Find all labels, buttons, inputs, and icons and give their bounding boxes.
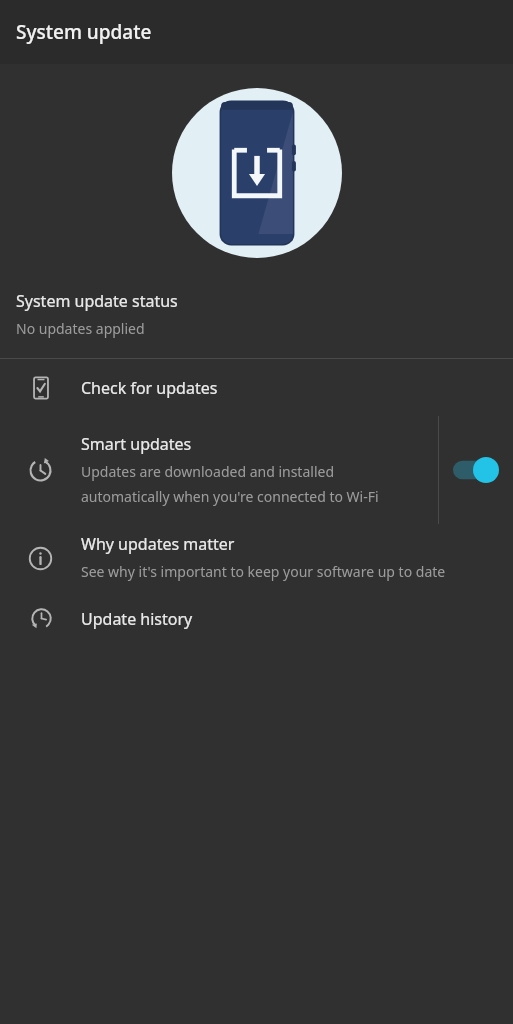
button[interactable]: Update history [0, 592, 513, 645]
button[interactable]: Smart updates [0, 421, 438, 520]
button[interactable]: Check for updates [0, 359, 513, 416]
button[interactable]: Smart updates toggle [439, 416, 513, 524]
staticText: Update history [81, 608, 193, 630]
button[interactable]: Why updates matter [0, 524, 513, 592]
staticText: Smart updates [81, 433, 192, 455]
staticText: Why updates matter [81, 533, 235, 555]
staticText: Updates are downloaded and installed aut… [81, 462, 426, 506]
staticText: System update [16, 19, 152, 45]
staticText: See why it's important to keep your soft… [81, 562, 446, 581]
staticText: No updates applied [16, 319, 145, 338]
staticText: Check for updates [81, 377, 218, 399]
staticText: System update status [16, 290, 178, 312]
